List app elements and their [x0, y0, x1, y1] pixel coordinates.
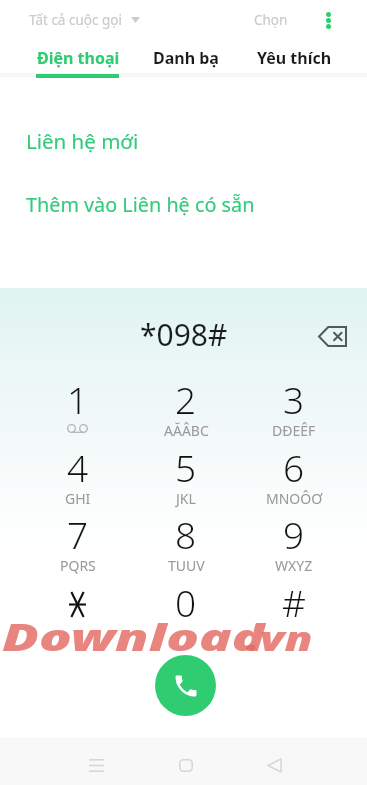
button[interactable]: Home [164, 742, 208, 785]
button[interactable]: 9 [240, 509, 348, 576]
button[interactable]: Liên hệ mới [0, 123, 367, 159]
button[interactable]: Yêu thích [240, 44, 348, 72]
button[interactable]: 2 [132, 374, 240, 441]
staticText: 6 [283, 442, 305, 492]
button[interactable]: 3 [240, 374, 348, 441]
staticText: 1 [67, 374, 89, 424]
staticText: # [282, 577, 306, 627]
staticText: Điện thoại [37, 47, 120, 69]
staticText: 7 [67, 509, 89, 559]
button[interactable] [23, 577, 132, 644]
button[interactable]: Danh bạ [132, 44, 240, 72]
button[interactable]: Recents [74, 742, 118, 785]
button[interactable]: Thêm vào Liên hệ có sẵn [0, 186, 367, 222]
staticText: GHI [65, 489, 91, 508]
staticText: Thêm vào Liên hệ có sẵn [26, 191, 255, 218]
staticText: 4 [67, 442, 89, 492]
button[interactable]: # [240, 577, 348, 644]
button[interactable]: Tất cả cuộc gọi [18, 2, 151, 38]
button[interactable]: Chọn [243, 2, 299, 38]
button[interactable]: 6 [240, 442, 348, 509]
staticText: Danh bạ [153, 47, 219, 69]
button[interactable]: 4 [23, 442, 132, 509]
staticText: .vn [246, 616, 313, 661]
button[interactable]: Back [252, 742, 296, 785]
staticText: 3 [283, 374, 305, 424]
staticText: WXYZ [275, 556, 313, 575]
staticText: DĐEÊF [272, 421, 316, 440]
staticText: AĂÂBC [164, 421, 209, 440]
staticText: *098# [140, 314, 228, 355]
button[interactable]: 7 [23, 509, 132, 576]
staticText: 0 [175, 577, 197, 627]
button[interactable]: Điện thoại [24, 44, 132, 72]
staticText: Yêu thích [257, 47, 332, 69]
button[interactable]: 1 [23, 374, 132, 441]
staticText: Download [2, 611, 265, 661]
staticText: TUUV [168, 556, 205, 575]
button[interactable]: More options [308, 0, 348, 40]
button[interactable]: 8 [132, 509, 240, 576]
staticText: JKL [176, 489, 196, 508]
button[interactable]: 0 [132, 577, 240, 644]
staticText: MNOÔƠ [266, 489, 323, 508]
button[interactable]: Call [155, 655, 216, 716]
staticText: 8 [175, 509, 197, 559]
staticText: Chọn [254, 11, 288, 29]
staticText: Liên hệ mới [26, 127, 139, 155]
button[interactable]: Backspace [309, 312, 357, 360]
staticText: 9 [283, 509, 305, 559]
staticText: 2 [175, 374, 197, 424]
button[interactable]: 5 [132, 442, 240, 509]
staticText: PQRS [60, 556, 96, 575]
staticText: Tất cả cuộc gọi [29, 11, 122, 29]
staticText: 5 [175, 442, 197, 492]
